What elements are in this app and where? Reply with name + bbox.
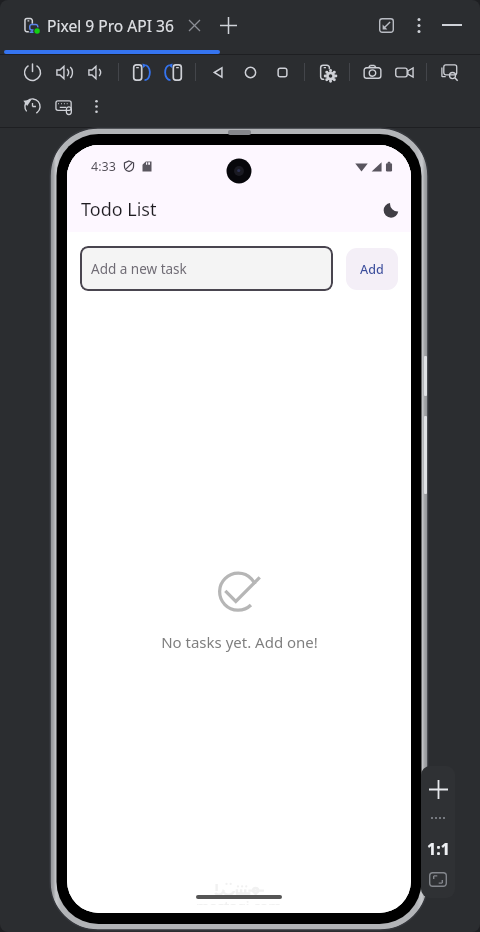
button[interactable]: Rotate left — [125, 57, 157, 87]
staticText: 1:1 — [427, 838, 450, 860]
button[interactable]: More options — [406, 12, 432, 38]
button[interactable]: Inspect — [433, 57, 465, 87]
staticText: 4:33 — [91, 158, 116, 175]
button[interactable]: More — [80, 91, 112, 121]
button[interactable]: Add a new task — [80, 246, 333, 291]
staticText: Add — [360, 261, 384, 278]
button[interactable]: Rotate right — [157, 57, 189, 87]
button[interactable]: Record screen — [388, 57, 420, 87]
button[interactable]: New tab — [216, 13, 240, 37]
button[interactable]: Fit to screen — [421, 866, 455, 892]
staticText: Todo List — [81, 197, 157, 222]
button[interactable]: Home — [234, 57, 266, 87]
button[interactable]: Power — [16, 57, 48, 87]
button[interactable]: Zoom out — [421, 804, 455, 832]
button[interactable]: Add — [346, 248, 398, 290]
staticText: No tasks yet. Add one! — [161, 632, 318, 652]
button[interactable]: Collapse — [373, 12, 399, 38]
button[interactable]: Close tab — [182, 13, 206, 37]
staticText: Add a new task — [91, 260, 187, 278]
button[interactable]: Volume down — [80, 57, 112, 87]
button[interactable]: Minimize — [439, 12, 465, 38]
button[interactable]: Volume up — [48, 57, 80, 87]
button[interactable]: Device settings — [311, 57, 343, 87]
button[interactable]: 1:1 — [421, 834, 455, 864]
button[interactable]: Recents — [266, 57, 298, 87]
button[interactable]: Back — [202, 57, 234, 87]
button[interactable]: Zoom in — [421, 772, 455, 806]
button[interactable]: History — [16, 91, 48, 121]
staticText: Pixel 9 Pro API 36 — [47, 15, 174, 36]
button[interactable]: Screenshot — [356, 57, 388, 87]
button[interactable]: Toggle dark mode — [375, 194, 407, 226]
button[interactable]: Keyboard — [48, 91, 80, 121]
staticText: mostaqi.com — [196, 897, 282, 905]
